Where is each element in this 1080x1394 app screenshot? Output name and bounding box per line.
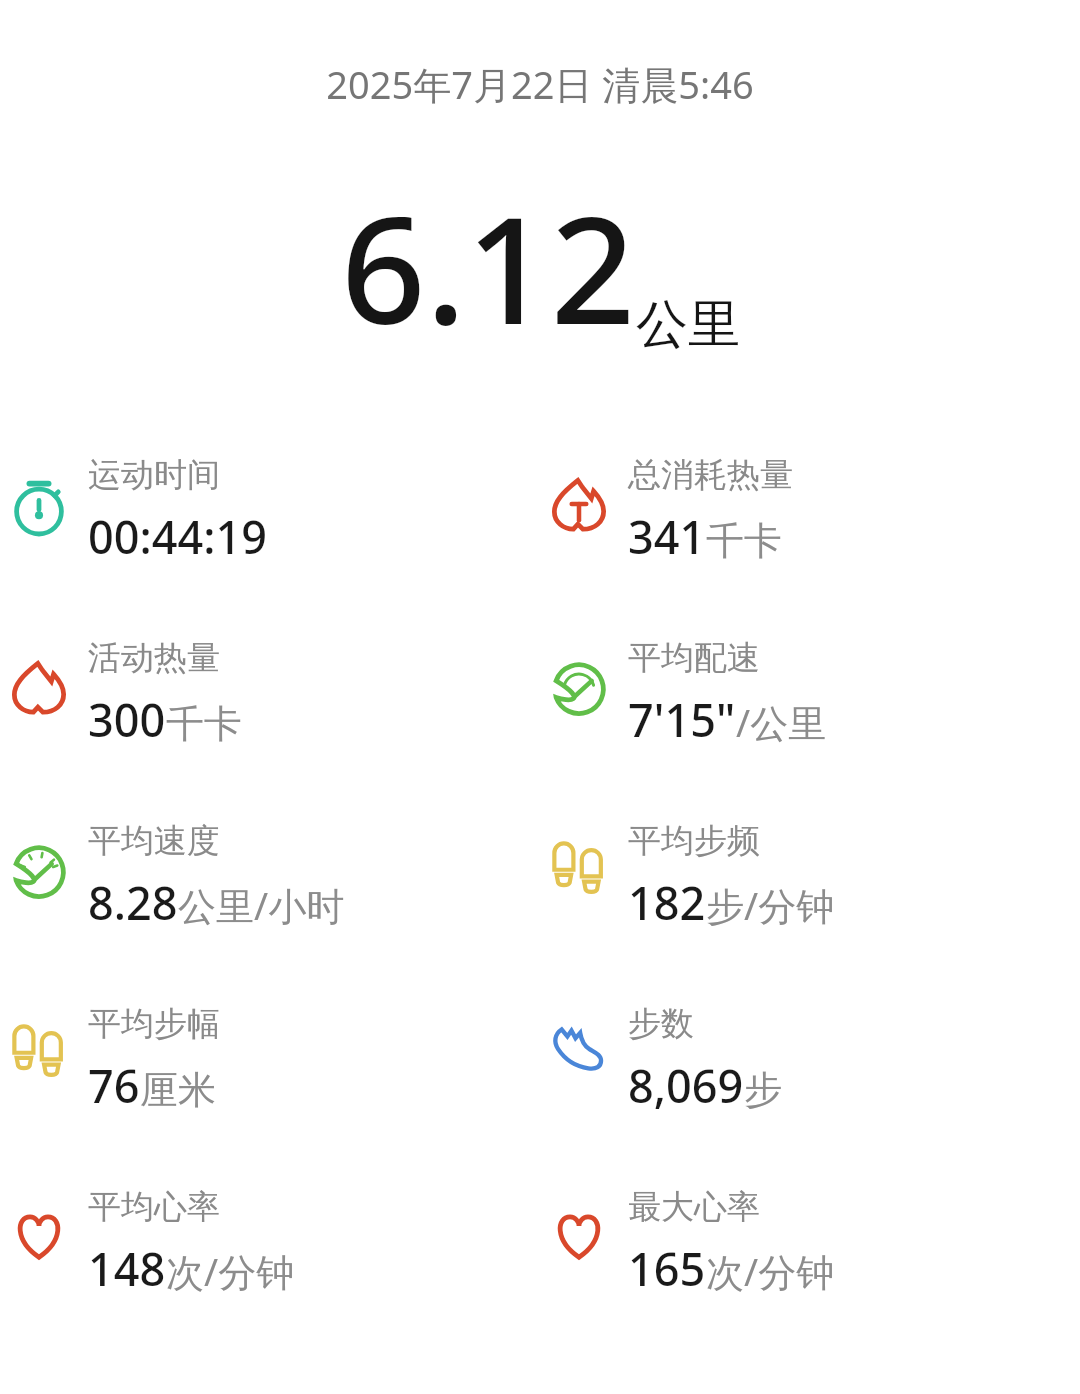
staticText: 平均步频	[628, 820, 760, 862]
button[interactable]: 活动热量	[0, 637, 540, 750]
other: 活动热量	[11, 659, 67, 715]
staticText: 341	[628, 506, 706, 567]
staticText: 6.12	[341, 166, 636, 368]
other: 步数	[550, 1019, 608, 1077]
button[interactable]: 平均配速	[540, 637, 1080, 750]
staticText: 次/分钟	[166, 1245, 295, 1297]
staticText: 182	[628, 872, 706, 933]
other: 平均步幅	[11, 1023, 67, 1079]
other: 平均配速	[550, 659, 608, 717]
staticText: 公里/小时	[178, 879, 345, 931]
button[interactable]: 最大心率	[540, 1186, 1080, 1299]
staticText: 活动热量	[88, 637, 220, 679]
other: 运动时间	[11, 478, 67, 534]
staticText: 8,069	[628, 1055, 744, 1116]
staticText: 165	[628, 1238, 706, 1299]
staticText: 平均速度	[88, 820, 220, 862]
staticText: 148	[88, 1238, 166, 1299]
staticText: 76	[88, 1055, 140, 1116]
other: 总消耗热量	[551, 476, 607, 532]
staticText: 2025年7月22日 清晨5:46	[0, 58, 1080, 110]
staticText: 00:44:19	[88, 506, 267, 567]
staticText: 总消耗热量	[628, 454, 793, 496]
staticText: 千卡	[166, 700, 242, 748]
staticText: 千卡	[706, 517, 782, 565]
button[interactable]: 平均步频	[540, 820, 1080, 933]
button[interactable]: 平均步幅	[0, 1003, 540, 1116]
other: 平均速度	[10, 842, 68, 900]
button[interactable]: 运动时间	[0, 454, 540, 567]
staticText: 步	[744, 1066, 782, 1114]
other: 平均步频	[551, 840, 607, 896]
staticText: 运动时间	[88, 454, 220, 496]
other: 最大心率	[551, 1208, 607, 1264]
button[interactable]: 总消耗热量	[540, 454, 1080, 567]
staticText: 次/分钟	[706, 1245, 835, 1297]
staticText: 7'15"	[628, 689, 736, 750]
staticText: 公里	[636, 292, 740, 358]
staticText: /公里	[736, 696, 827, 748]
staticText: 平均心率	[88, 1186, 220, 1228]
button[interactable]: 平均速度	[0, 820, 540, 933]
button[interactable]: 平均心率	[0, 1186, 540, 1299]
staticText: 300	[88, 689, 166, 750]
other: 平均心率	[11, 1208, 67, 1264]
staticText: 厘米	[140, 1066, 216, 1114]
staticText: 步/分钟	[706, 879, 835, 931]
staticText: 平均配速	[628, 637, 760, 679]
staticText: 平均步幅	[88, 1003, 220, 1045]
button[interactable]: 步数	[540, 1003, 1080, 1116]
staticText: 最大心率	[628, 1186, 760, 1228]
staticText: 8.28	[88, 872, 178, 933]
staticText: 步数	[628, 1003, 694, 1045]
